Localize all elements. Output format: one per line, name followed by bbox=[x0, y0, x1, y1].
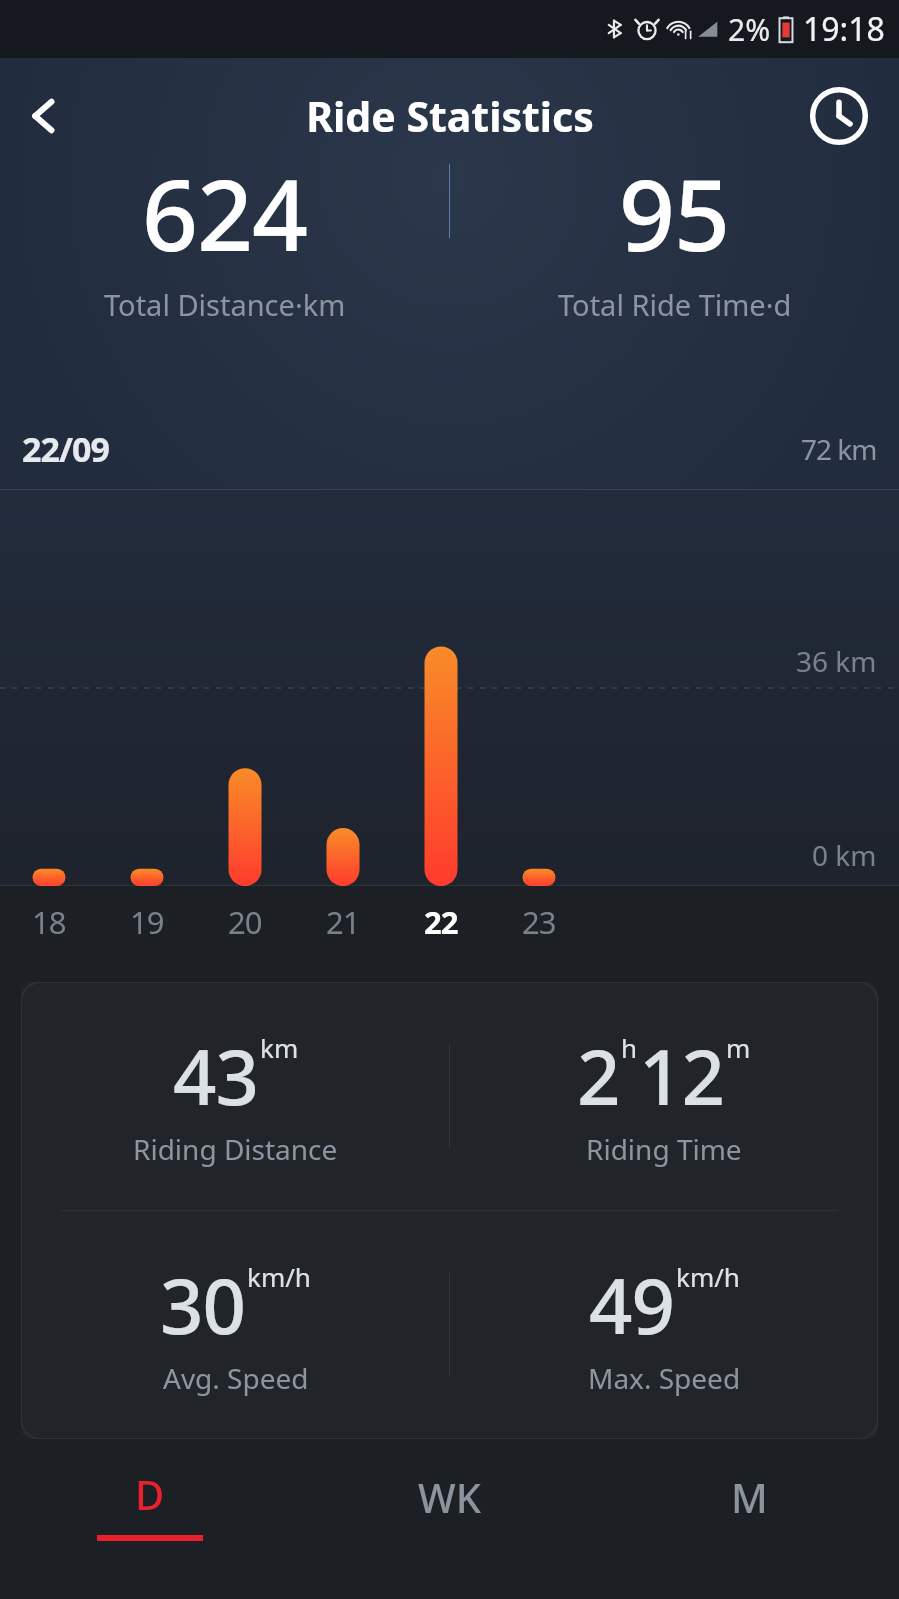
staticText: Avg. Speed bbox=[163, 1359, 309, 1397]
staticText: 43 bbox=[173, 1024, 258, 1128]
staticText: 624 bbox=[142, 146, 308, 279]
staticText: 30 bbox=[160, 1253, 245, 1357]
staticText: h bbox=[621, 1030, 638, 1065]
button[interactable]: 20 bbox=[196, 886, 294, 958]
staticText: WK bbox=[418, 1470, 481, 1524]
staticText: 22/09 bbox=[22, 426, 109, 472]
staticText: km/h bbox=[247, 1259, 311, 1294]
staticText: 2 bbox=[577, 1024, 620, 1128]
staticText: m bbox=[726, 1030, 751, 1065]
staticText: Riding Time bbox=[586, 1130, 742, 1168]
staticText: 0 km bbox=[812, 836, 877, 874]
staticText: 22 bbox=[424, 901, 458, 943]
staticText: 95 bbox=[619, 146, 730, 279]
staticText: 18 bbox=[32, 901, 66, 943]
button[interactable]: 43 bbox=[21, 982, 449, 1210]
button[interactable]: 2 bbox=[450, 982, 878, 1210]
staticText: 72 km bbox=[801, 430, 877, 468]
staticText: km/h bbox=[676, 1259, 740, 1294]
button[interactable]: 49 bbox=[450, 1211, 878, 1439]
button[interactable]: WK bbox=[299, 1449, 599, 1559]
staticText: Ride Statistics bbox=[306, 88, 594, 144]
staticText: 19:18 bbox=[803, 7, 885, 51]
staticText: 36 km bbox=[796, 642, 877, 680]
staticText: Riding Distance bbox=[133, 1130, 338, 1168]
staticText: km bbox=[260, 1030, 299, 1065]
staticText: 49 bbox=[589, 1253, 674, 1357]
button[interactable]: D bbox=[0, 1449, 299, 1559]
button[interactable]: 18 bbox=[0, 886, 98, 958]
staticText: Total Distance·km bbox=[104, 285, 346, 324]
button[interactable]: M bbox=[599, 1449, 899, 1559]
button[interactable]: History bbox=[807, 84, 871, 148]
button[interactable]: Back bbox=[8, 80, 80, 152]
staticText: D bbox=[135, 1467, 165, 1521]
staticText: Total Ride Time·d bbox=[558, 285, 792, 324]
staticText: 20 bbox=[228, 901, 262, 943]
staticText: Max. Speed bbox=[588, 1359, 741, 1397]
button[interactable]: 19 bbox=[98, 886, 196, 958]
staticText: M bbox=[731, 1470, 768, 1524]
staticText: 19 bbox=[130, 901, 164, 943]
staticText: 21 bbox=[326, 901, 360, 943]
staticText: 23 bbox=[522, 901, 556, 943]
staticText: 2% bbox=[728, 9, 771, 50]
button[interactable]: 21 bbox=[294, 886, 392, 958]
staticText: 12 bbox=[639, 1024, 724, 1128]
button[interactable]: 22 bbox=[392, 886, 490, 958]
button[interactable]: 23 bbox=[490, 886, 588, 958]
button[interactable]: 30 bbox=[21, 1211, 449, 1439]
